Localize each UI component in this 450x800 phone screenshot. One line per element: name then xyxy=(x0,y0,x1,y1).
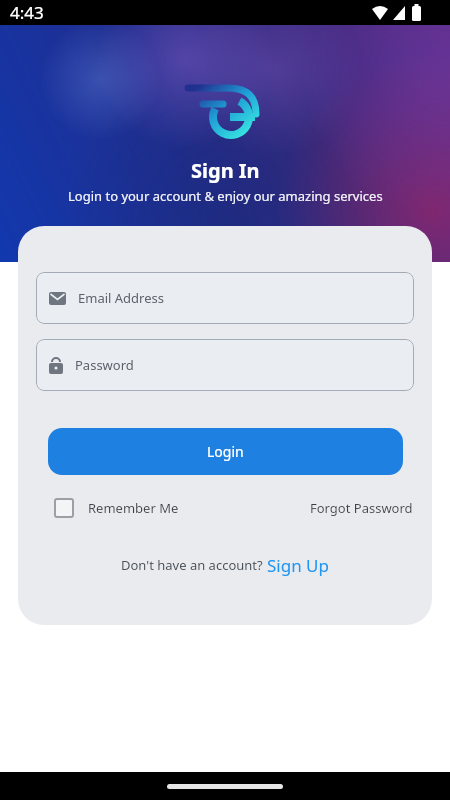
staticText: Email Address xyxy=(78,289,164,307)
button[interactable]: Login xyxy=(48,428,403,475)
button[interactable]: Sign Up xyxy=(267,554,329,577)
staticText: Don't have an account? xyxy=(121,556,267,574)
staticText: Sign In xyxy=(191,157,260,184)
staticText: 4:43 xyxy=(10,1,44,24)
button[interactable]: Remember Me xyxy=(55,499,179,517)
staticText: Login xyxy=(207,442,244,461)
staticText: Login to your account & enjoy our amazin… xyxy=(68,187,383,205)
button[interactable]: Password xyxy=(36,339,414,391)
staticText: Password xyxy=(75,356,134,374)
staticText: Remember Me xyxy=(88,499,179,517)
button[interactable]: Email Address xyxy=(36,272,414,324)
button[interactable]: Forgot Password xyxy=(310,499,413,517)
